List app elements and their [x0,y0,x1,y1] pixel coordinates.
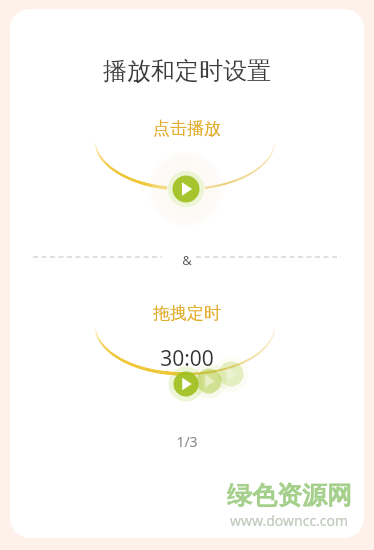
staticText: 拖拽定时 [10,303,364,324]
staticText: www.downcc.com [230,511,349,530]
staticText: 30:00 [10,344,364,373]
staticText: & [10,251,364,269]
staticText: 播放和定时设置 [10,56,364,86]
staticText: 点击播放 [10,118,364,139]
staticText: 绿色资源网 [227,480,352,511]
button[interactable]: 点击播放 [168,163,214,209]
button[interactable]: 拖拽定时进度 [168,358,214,404]
staticText: 1/3 [10,432,364,451]
